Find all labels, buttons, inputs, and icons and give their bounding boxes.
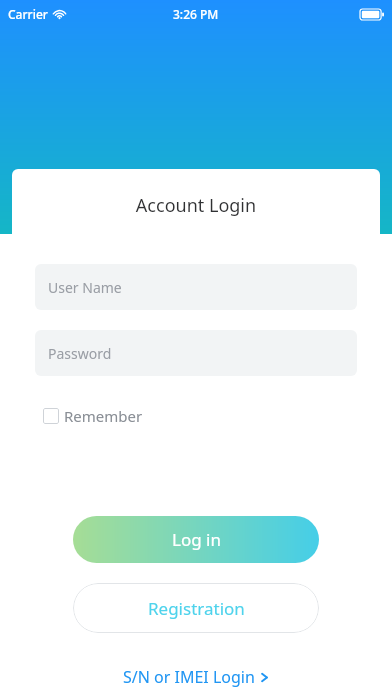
staticText: Remember — [64, 406, 143, 426]
button[interactable]: Registration — [73, 583, 319, 633]
button[interactable]: S/N or IMEI Login — [111, 662, 282, 692]
staticText: S/N or IMEI Login — [123, 666, 255, 688]
staticText: 3:26 PM — [173, 6, 219, 22]
staticText: Log in — [172, 528, 221, 551]
button[interactable]: Log in — [73, 516, 319, 563]
staticText: User Name — [48, 278, 122, 297]
staticText: Carrier — [8, 6, 48, 22]
button[interactable]: User Name — [35, 264, 357, 310]
staticText: Registration — [148, 597, 245, 620]
button[interactable]: Password — [35, 330, 357, 376]
button[interactable]: Remember — [35, 402, 151, 430]
staticText: Account Login — [12, 193, 380, 218]
staticText: Password — [48, 344, 112, 363]
